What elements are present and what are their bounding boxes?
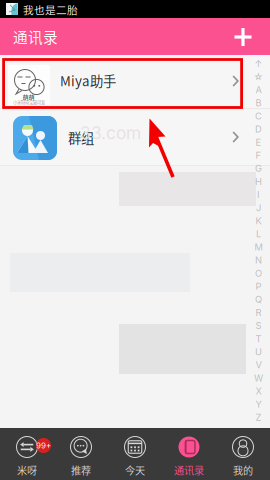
staticText: W bbox=[254, 372, 263, 384]
staticText: S bbox=[255, 320, 261, 331]
staticText: L bbox=[256, 228, 261, 240]
staticText: E bbox=[255, 137, 261, 148]
staticText: Q bbox=[255, 294, 262, 305]
staticText: ↑ bbox=[254, 58, 262, 69]
staticText: H bbox=[255, 176, 262, 187]
button[interactable]: 通讯录 bbox=[162, 428, 216, 480]
staticText: 33.com bbox=[80, 122, 141, 143]
staticText: Miya助手 bbox=[60, 71, 116, 90]
staticText: 我的 bbox=[233, 463, 253, 477]
staticText: 小米呀萌宝最可爱 bbox=[13, 99, 45, 105]
staticText: Y bbox=[255, 399, 261, 410]
staticText: 99+ bbox=[36, 441, 51, 450]
staticText: 推荐 bbox=[71, 463, 91, 477]
staticText: 我也是二胎 bbox=[23, 2, 78, 17]
button[interactable]: 群组 bbox=[0, 109, 270, 165]
staticText: P bbox=[255, 281, 261, 292]
staticText: D bbox=[255, 123, 262, 135]
staticText: M bbox=[254, 241, 262, 253]
staticText: B bbox=[255, 97, 261, 109]
staticText: U bbox=[255, 346, 262, 357]
staticText: A bbox=[255, 84, 261, 95]
staticText: C bbox=[255, 110, 262, 122]
staticText: K bbox=[255, 215, 261, 226]
staticText: 米呀 bbox=[17, 463, 37, 477]
staticText: G bbox=[255, 163, 262, 174]
staticText: 群组 bbox=[68, 128, 94, 147]
staticText: 今天 bbox=[125, 463, 145, 477]
staticText: O bbox=[255, 268, 262, 279]
staticText: 通讯录 bbox=[174, 463, 204, 477]
button[interactable]: 推荐 bbox=[54, 428, 108, 480]
staticText: N bbox=[255, 254, 262, 266]
button[interactable]: Add contact bbox=[226, 20, 260, 54]
staticText: ☆ bbox=[253, 71, 263, 82]
staticText: Z bbox=[255, 412, 261, 423]
button[interactable]: 99+ bbox=[0, 428, 54, 480]
staticText: V bbox=[255, 359, 261, 371]
button[interactable]: 今天 bbox=[108, 428, 162, 480]
staticText: F bbox=[255, 150, 261, 161]
staticText: X bbox=[255, 385, 261, 397]
staticText: 通讯录 bbox=[13, 26, 58, 47]
staticText: I bbox=[257, 189, 260, 200]
button[interactable]: 萌萌 bbox=[0, 55, 270, 108]
staticText: T bbox=[255, 333, 261, 344]
staticText: 萌萌 bbox=[22, 92, 34, 101]
staticText: R bbox=[255, 307, 261, 318]
staticText: J bbox=[256, 202, 261, 213]
button[interactable]: 我的 bbox=[216, 428, 270, 480]
